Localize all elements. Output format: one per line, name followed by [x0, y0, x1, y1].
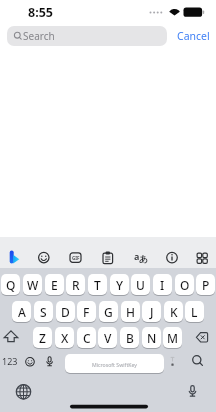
button[interactable]	[194, 246, 216, 268]
staticText: A	[18, 304, 26, 320]
staticText: GIF	[72, 255, 80, 261]
button[interactable]: Cancel	[172, 26, 214, 46]
button[interactable]: P	[196, 274, 215, 296]
staticText: 123	[2, 355, 18, 367]
button[interactable]: X	[55, 327, 74, 349]
button[interactable]	[36, 246, 58, 268]
button[interactable]: Microsoft SwiftKey	[65, 354, 164, 374]
staticText: B	[126, 330, 134, 346]
staticText: N	[147, 330, 157, 346]
staticText: V	[104, 330, 112, 346]
button[interactable]: N	[142, 327, 161, 349]
staticText: M	[167, 330, 179, 346]
staticText: S	[40, 304, 47, 320]
button[interactable]: E	[45, 274, 64, 296]
button[interactable]	[101, 246, 123, 268]
staticText: I	[160, 277, 165, 293]
button[interactable]: V	[98, 327, 117, 349]
button[interactable]	[188, 327, 214, 348]
staticText: K	[170, 304, 178, 320]
button[interactable]	[132, 246, 154, 268]
button[interactable]	[2, 327, 28, 348]
staticText: C	[83, 330, 91, 346]
button[interactable]: Q	[1, 274, 20, 296]
staticText: O	[180, 277, 190, 293]
staticText: Q	[6, 277, 16, 293]
button[interactable]: B	[120, 327, 139, 349]
button[interactable]: U	[131, 274, 150, 296]
button[interactable]: R	[66, 274, 85, 296]
button[interactable]: G	[99, 301, 118, 323]
staticText: F	[83, 304, 90, 320]
staticText: T	[94, 277, 101, 293]
staticText: 8:55	[28, 4, 53, 21]
staticText: Y	[116, 277, 124, 293]
button[interactable]: M	[163, 327, 182, 349]
button[interactable]: Y	[110, 274, 129, 296]
button[interactable]: A	[12, 301, 31, 323]
button[interactable]: S	[34, 301, 53, 323]
button[interactable]	[181, 380, 205, 404]
staticText: G	[104, 304, 113, 320]
button[interactable]	[20, 352, 40, 372]
button[interactable]	[40, 352, 60, 372]
button[interactable]: T	[88, 274, 107, 296]
staticText: H	[126, 304, 135, 320]
button[interactable]: Z	[33, 327, 52, 349]
button[interactable]	[7, 26, 167, 46]
button[interactable]: K	[164, 301, 183, 323]
staticText: Z	[39, 330, 46, 346]
button[interactable]	[164, 246, 186, 268]
staticText: Search	[23, 29, 55, 43]
staticText: E	[51, 277, 58, 293]
staticText: W	[27, 277, 39, 293]
button[interactable]: 123	[1, 353, 19, 369]
staticText: R	[72, 277, 80, 293]
staticText: Microsoft SwiftKey	[92, 361, 137, 368]
button[interactable]	[68, 246, 90, 268]
button[interactable]: H	[121, 301, 140, 323]
button[interactable]	[12, 381, 36, 405]
staticText: U	[136, 277, 145, 293]
staticText: X	[61, 330, 69, 346]
staticText: a	[134, 250, 140, 260]
staticText: P	[202, 277, 210, 293]
staticText: L	[191, 304, 198, 320]
button[interactable]: J	[142, 301, 161, 323]
button[interactable]: L	[185, 301, 204, 323]
button[interactable]	[7, 246, 29, 268]
button[interactable]: W	[23, 274, 42, 296]
button[interactable]: C	[77, 327, 96, 349]
staticText: Cancel	[177, 29, 210, 43]
button[interactable]: O	[175, 274, 194, 296]
staticText: D	[61, 304, 70, 320]
staticText: あ	[139, 253, 149, 264]
staticText: J	[150, 304, 154, 320]
button[interactable]: I	[153, 274, 172, 296]
button[interactable]: F	[77, 301, 96, 323]
button[interactable]: D	[56, 301, 75, 323]
button[interactable]	[183, 350, 211, 372]
